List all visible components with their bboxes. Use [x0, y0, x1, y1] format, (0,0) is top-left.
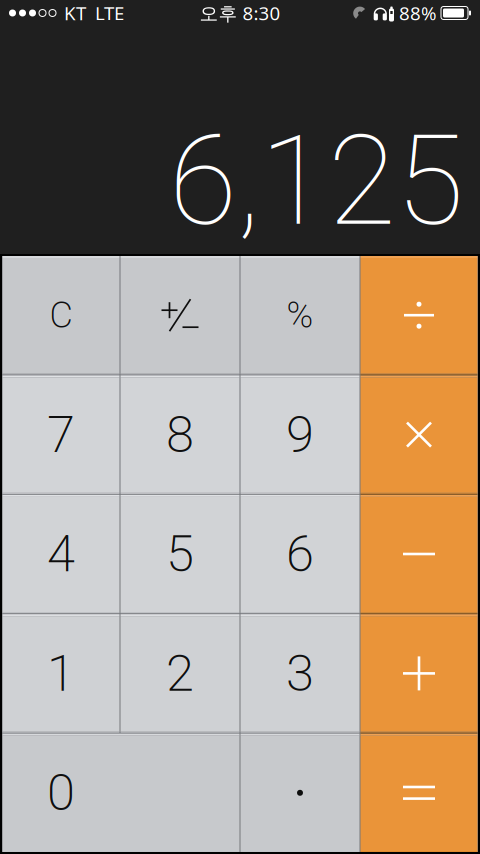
- staticText: 3: [286, 644, 314, 703]
- button[interactable]: 4: [2, 495, 119, 613]
- button[interactable]: Multiply: [360, 375, 477, 494]
- staticText: 4: [47, 524, 75, 584]
- button[interactable]: Add: [360, 614, 477, 733]
- button[interactable]: Decimal point: [240, 734, 359, 852]
- button[interactable]: 1: [2, 614, 119, 733]
- staticText: 0: [47, 763, 75, 822]
- button[interactable]: Clear: [2, 256, 119, 374]
- staticText: 88%: [399, 1, 437, 25]
- button[interactable]: Zero: [2, 734, 239, 852]
- staticText: 9: [286, 405, 314, 464]
- button[interactable]: Plus minus: [120, 256, 239, 374]
- staticText: 7: [47, 405, 75, 464]
- staticText: C: [49, 294, 72, 336]
- button[interactable]: 5: [120, 495, 239, 613]
- button[interactable]: 6: [240, 495, 359, 613]
- staticText: %: [286, 294, 313, 336]
- button[interactable]: 8: [120, 375, 239, 494]
- button[interactable]: 3: [240, 614, 359, 733]
- staticText: 1: [47, 644, 75, 703]
- button[interactable]: Percent: [240, 256, 359, 374]
- staticText: LTE: [95, 1, 124, 25]
- button[interactable]: Divide: [360, 256, 477, 374]
- staticText: 6,125: [169, 109, 464, 254]
- button[interactable]: 9: [240, 375, 359, 494]
- staticText: KT: [64, 1, 86, 25]
- button[interactable]: 2: [120, 614, 239, 733]
- staticText: 오후 8:30: [199, 1, 280, 25]
- button[interactable]: Equals: [360, 734, 477, 852]
- button[interactable]: 7: [2, 375, 119, 494]
- button[interactable]: Subtract: [360, 495, 477, 613]
- staticText: 8: [166, 405, 194, 464]
- staticText: 6: [286, 524, 314, 584]
- staticText: 5: [166, 524, 194, 584]
- staticText: 2: [166, 644, 194, 703]
